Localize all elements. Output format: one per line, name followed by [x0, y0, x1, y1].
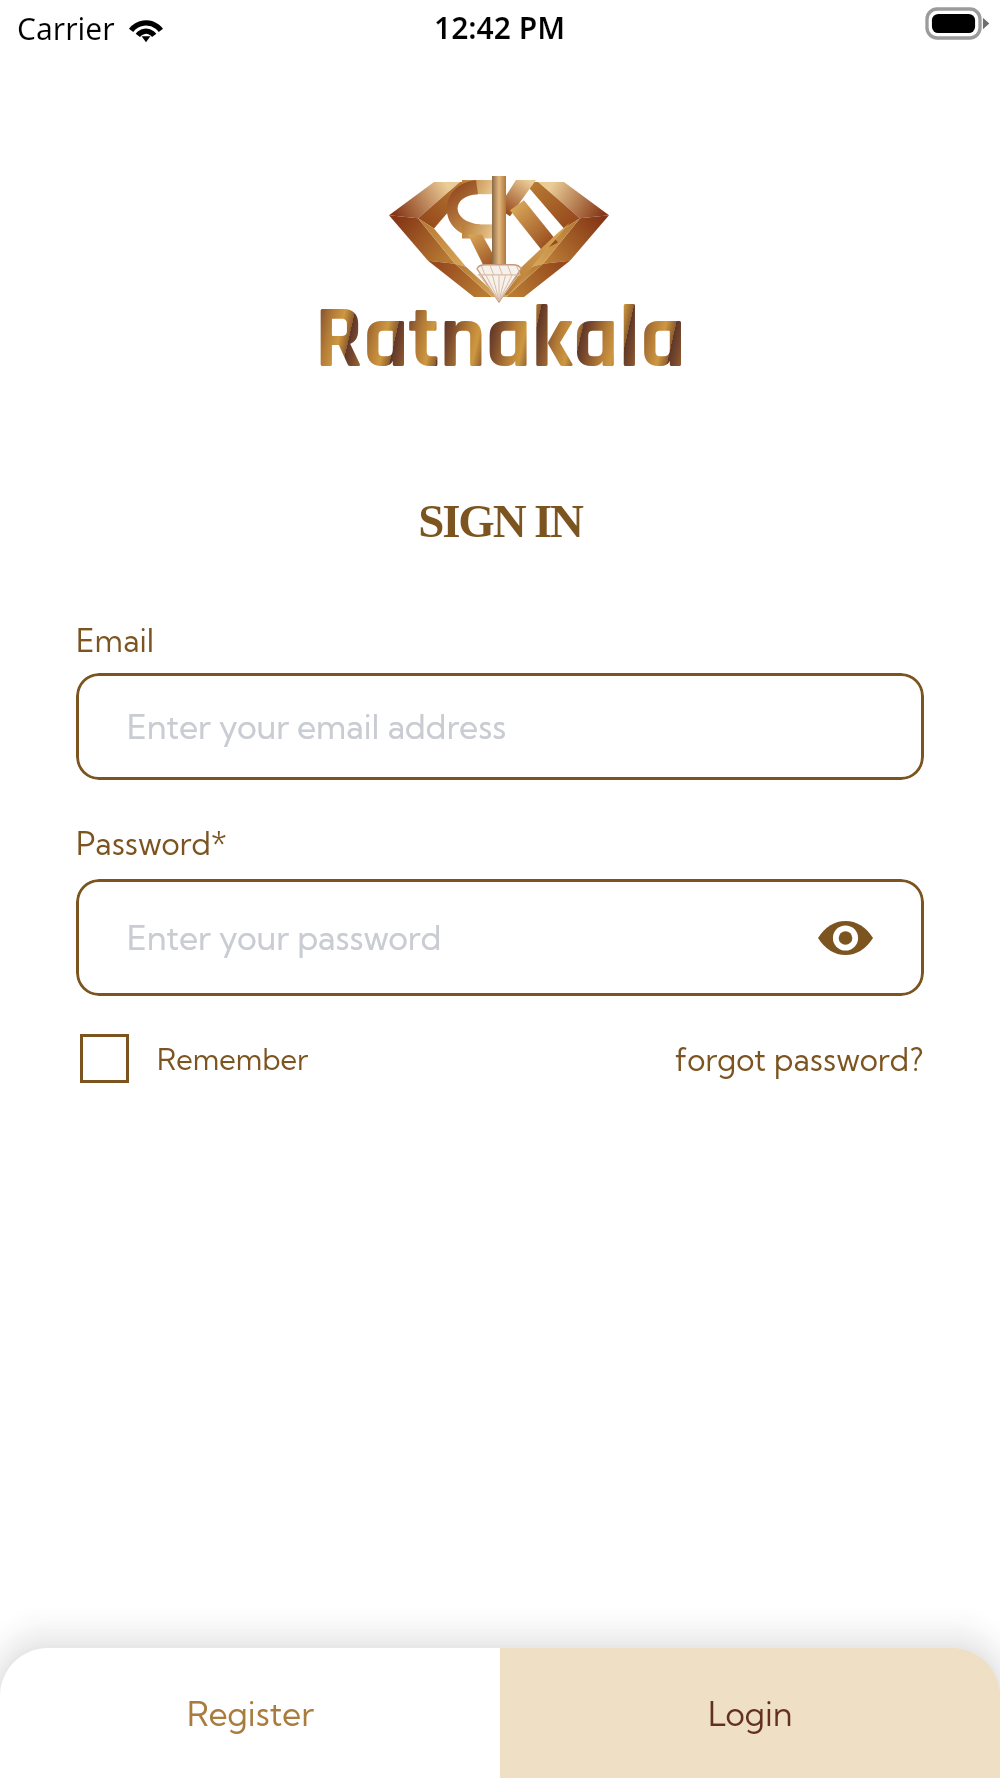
button[interactable]: Register [0, 1648, 500, 1778]
staticText: Login [708, 1693, 793, 1734]
staticText: Enter your email address [127, 706, 507, 747]
button[interactable]: forgot password? [675, 1040, 924, 1078]
button[interactable]: Login [500, 1648, 1000, 1778]
staticText: SIGN IN [418, 495, 582, 547]
staticText: Carrier [17, 8, 115, 49]
staticText: Email [76, 621, 155, 659]
staticText: forgot password? [675, 1040, 924, 1078]
button[interactable]: Show password [815, 908, 875, 968]
button[interactable]: Enter your password [76, 879, 924, 996]
staticText: Enter your password [127, 917, 442, 958]
button[interactable]: Enter your email address [76, 673, 924, 780]
staticText: Remember [157, 1041, 309, 1077]
button[interactable]: Remember [80, 1034, 309, 1083]
staticText: Password* [76, 824, 227, 862]
staticText: Ratnakala [315, 284, 686, 396]
staticText: 12:42 PM [434, 7, 566, 48]
staticText: Register [187, 1693, 314, 1734]
